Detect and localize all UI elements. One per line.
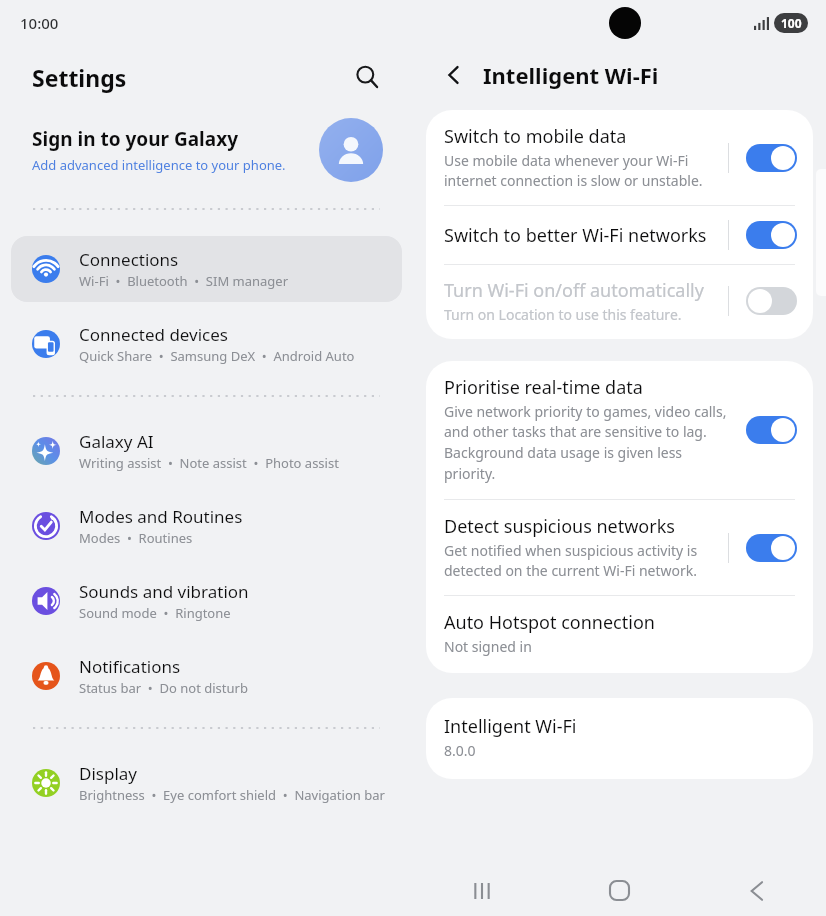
staticText: Intelligent Wi-Fi	[483, 60, 659, 90]
staticText: Sounds and vibration	[79, 580, 249, 603]
staticText: Notifications	[79, 655, 181, 678]
button[interactable]: Prioritise real-time data	[426, 361, 813, 499]
button[interactable]: Home	[550, 865, 688, 916]
button[interactable]: Connected devices	[11, 311, 402, 377]
staticText: Switch to mobile data	[444, 124, 627, 149]
button[interactable]: On	[746, 144, 797, 172]
staticText: Detect suspicious networks	[444, 514, 675, 539]
button[interactable]: Connections	[11, 236, 402, 302]
button[interactable]: Off	[746, 287, 797, 315]
staticText: Turn Wi-Fi on/off automatically	[444, 278, 704, 303]
button[interactable]: Search	[347, 57, 387, 97]
staticText: Give network priority to games, video ca…	[444, 402, 728, 484]
staticText: Get notified when suspicious activity is…	[444, 541, 698, 581]
button[interactable]: On	[746, 534, 797, 562]
staticText: Brightness • Eye comfort shield • Naviga…	[79, 786, 385, 804]
button[interactable]: Sounds and vibration	[11, 568, 402, 634]
button[interactable]: On	[746, 416, 797, 444]
staticText: Not signed in	[444, 637, 532, 656]
staticText: Modes • Routines	[79, 529, 193, 547]
staticText: Galaxy AI	[79, 430, 154, 453]
staticText: Intelligent Wi-Fi	[444, 714, 577, 739]
staticText: Prioritise real-time data	[444, 375, 643, 400]
button[interactable]: Sign in to your Galaxy	[0, 108, 413, 196]
staticText: Wi-Fi • Bluetooth • SIM manager	[79, 272, 289, 290]
button[interactable]: Back	[435, 56, 473, 94]
staticText: Auto Hotspot connection	[444, 610, 655, 635]
staticText: Display	[79, 762, 137, 785]
button[interactable]: Switch to better Wi-Fi networks	[426, 206, 813, 264]
staticText: Sign in to your Galaxy	[32, 126, 238, 152]
button[interactable]: Auto Hotspot connection	[426, 596, 813, 673]
staticText: Connections	[79, 248, 179, 271]
staticText: Settings	[32, 62, 347, 93]
staticText: Status bar • Do not disturb	[79, 679, 248, 697]
staticText: Quick Share • Samsung DeX • Android Auto	[79, 347, 355, 365]
staticText: 100	[781, 15, 802, 31]
button[interactable]: Turn Wi-Fi on/off automatically	[426, 265, 813, 339]
button[interactable]: Switch to mobile data	[426, 110, 813, 205]
staticText: Switch to better Wi-Fi networks	[444, 223, 707, 248]
staticText: 10:00	[20, 13, 59, 33]
staticText: Connected devices	[79, 323, 229, 346]
button[interactable]: Notifications	[11, 643, 402, 709]
staticText: Writing assist • Note assist • Photo ass…	[79, 454, 339, 472]
button[interactable]: Display	[11, 750, 402, 816]
button[interactable]: On	[746, 221, 797, 249]
button[interactable]: Modes and Routines	[11, 493, 402, 559]
staticText: Sound mode • Ringtone	[79, 604, 231, 622]
staticText: Turn on Location to use this feature.	[444, 305, 682, 324]
button[interactable]: Detect suspicious networks	[426, 500, 813, 595]
button[interactable]: Back	[688, 865, 826, 916]
staticText: 8.0.0	[444, 741, 476, 760]
button[interactable]: Intelligent Wi-Fi	[426, 698, 813, 779]
staticText: Modes and Routines	[79, 505, 243, 528]
button[interactable]: Galaxy AI	[11, 418, 402, 484]
staticText: Add advanced intelligence to your phone.	[32, 156, 286, 174]
staticText: Use mobile data whenever your Wi-Fi inte…	[444, 151, 703, 191]
button[interactable]: Recent apps	[413, 865, 550, 916]
